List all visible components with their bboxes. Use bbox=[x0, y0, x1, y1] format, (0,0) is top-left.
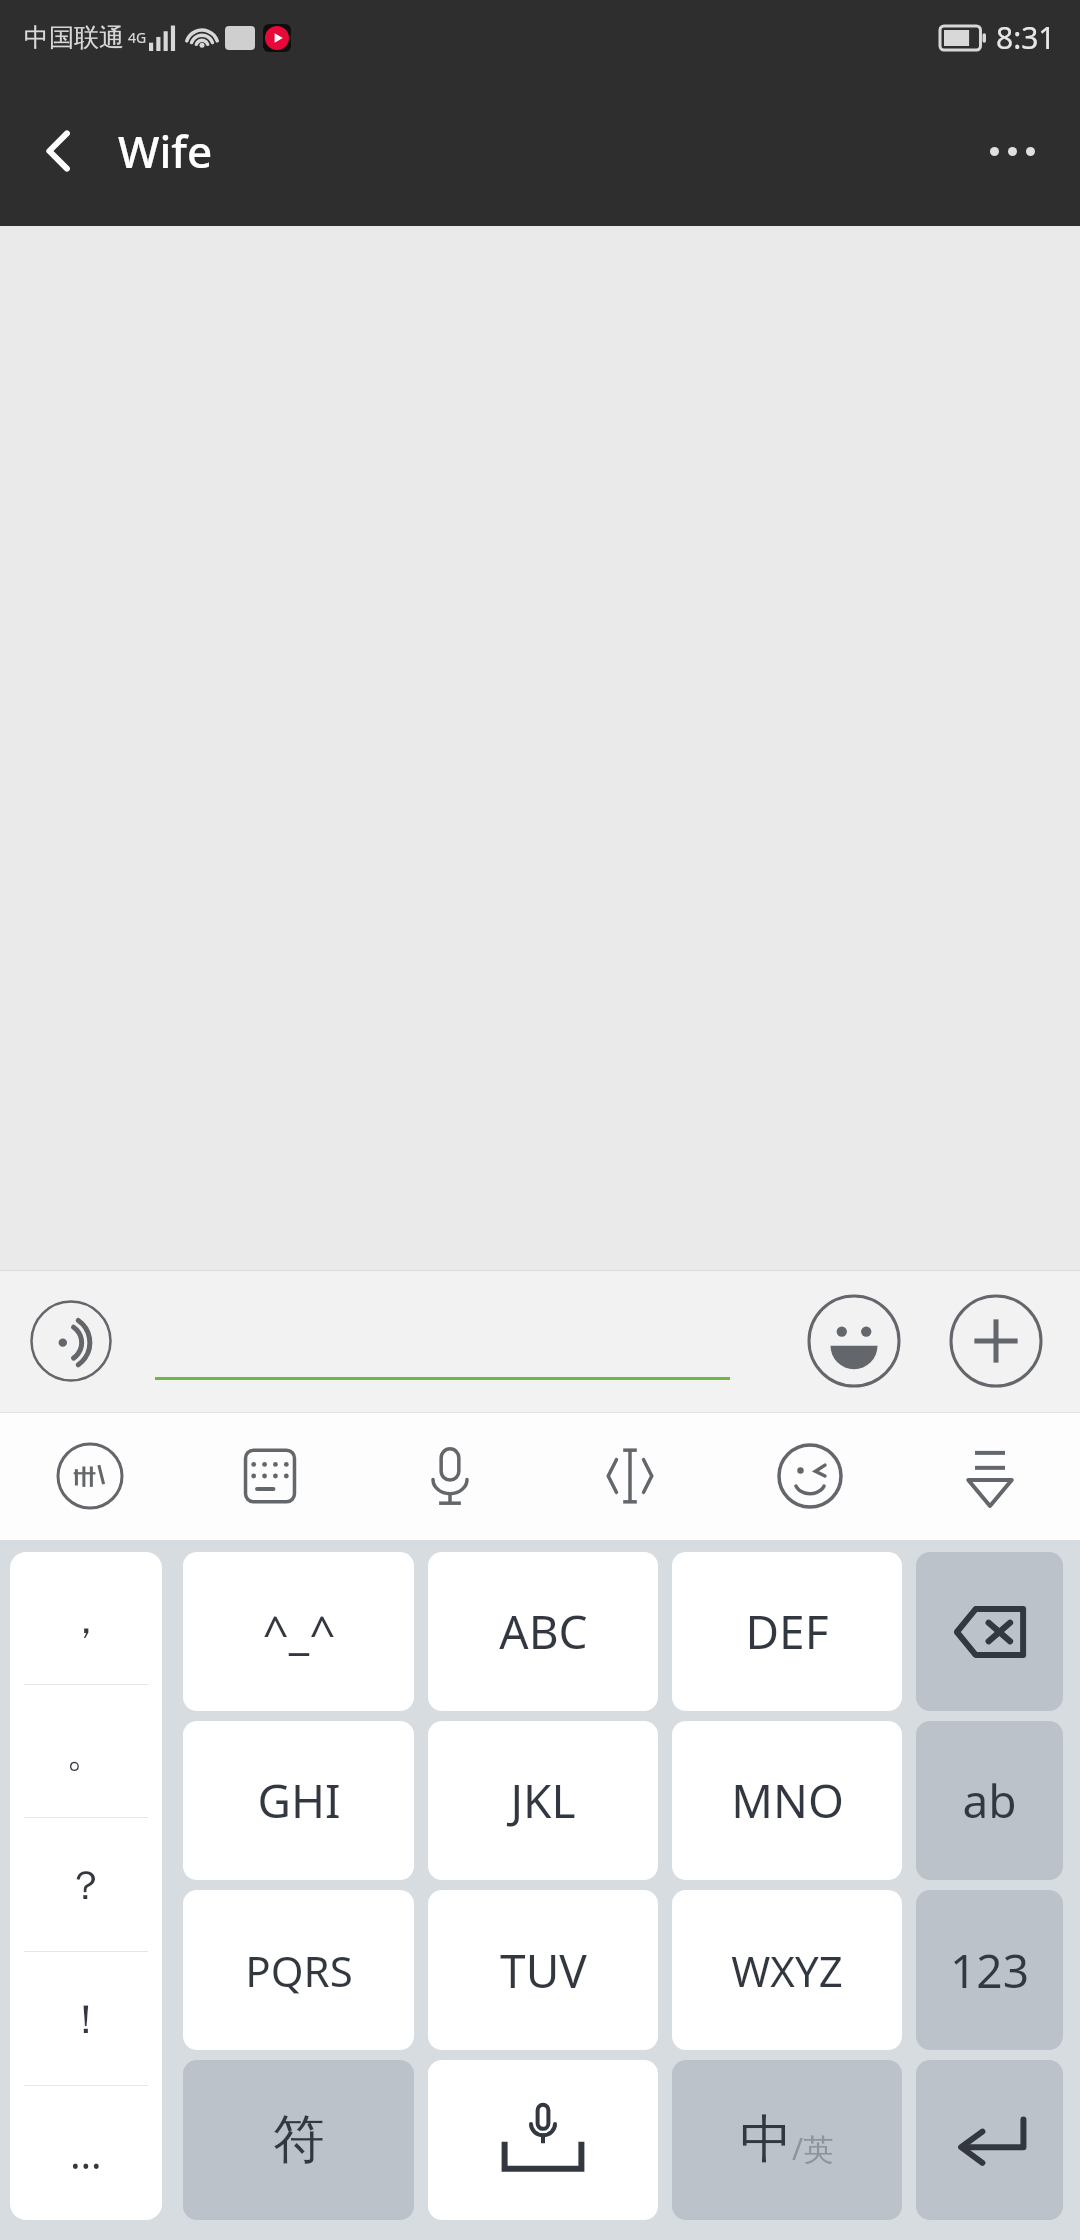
button[interactable]: ab bbox=[916, 1721, 1063, 1880]
staticText: ？ bbox=[66, 1860, 106, 1910]
button[interactable]: 123 bbox=[916, 1890, 1063, 2050]
staticText: ， bbox=[66, 1594, 106, 1644]
staticText: TUV bbox=[500, 1939, 587, 2002]
button[interactable]: ！ bbox=[10, 1952, 162, 2086]
staticText: PQRS bbox=[245, 1942, 353, 1999]
staticText: 123 bbox=[950, 1939, 1029, 2002]
button[interactable]: Hide keyboard bbox=[900, 1412, 1080, 1540]
button[interactable]: 。 bbox=[10, 1685, 162, 1818]
button[interactable] bbox=[155, 1294, 775, 1394]
staticText: WXYZ bbox=[731, 1942, 843, 1999]
button[interactable]: More functions bbox=[948, 1293, 1044, 1389]
staticText: JKL bbox=[510, 1769, 576, 1832]
button[interactable]: GHI bbox=[183, 1721, 414, 1880]
button[interactable]: Input method logo bbox=[0, 1412, 180, 1540]
button[interactable]: 符 bbox=[183, 2060, 414, 2220]
button[interactable]: Voice input bbox=[30, 1300, 112, 1382]
staticText: … bbox=[70, 2126, 102, 2180]
button[interactable]: ABC bbox=[428, 1552, 658, 1711]
button[interactable]: ， bbox=[10, 1552, 162, 1685]
button[interactable]: More options bbox=[964, 103, 1060, 199]
staticText: 中 bbox=[740, 2107, 792, 2173]
staticText: 8:31 bbox=[996, 17, 1056, 58]
button[interactable]: PQRS bbox=[183, 1890, 414, 2050]
button[interactable]: DEF bbox=[672, 1552, 902, 1711]
staticText: 中国联通 bbox=[24, 22, 124, 53]
button[interactable]: WXYZ bbox=[672, 1890, 902, 2050]
button[interactable]: Text cursor bbox=[540, 1412, 720, 1540]
button[interactable]: MNO bbox=[672, 1721, 902, 1880]
staticText: 符 bbox=[273, 2107, 325, 2173]
button[interactable]: Enter bbox=[916, 2060, 1063, 2220]
button[interactable]: Space bbox=[428, 2060, 658, 2220]
staticText: MNO bbox=[731, 1769, 844, 1832]
button[interactable]: … bbox=[10, 2086, 162, 2220]
staticText: /英 bbox=[792, 2128, 834, 2169]
staticText: 4G bbox=[128, 28, 147, 47]
staticText: 。 bbox=[66, 1727, 106, 1777]
button[interactable]: Emoji bbox=[806, 1293, 902, 1389]
button[interactable]: ？ bbox=[10, 1818, 162, 1952]
staticText: DEF bbox=[745, 1600, 829, 1663]
staticText: ab bbox=[962, 1769, 1017, 1832]
button[interactable]: 中 bbox=[672, 2060, 902, 2220]
button[interactable]: Backspace bbox=[916, 1552, 1063, 1711]
button[interactable]: JKL bbox=[428, 1721, 658, 1880]
staticText: ABC bbox=[499, 1600, 588, 1663]
staticText: ^_^ bbox=[262, 1600, 336, 1663]
button[interactable]: Keyboard layout bbox=[180, 1412, 360, 1540]
staticText: ！ bbox=[66, 1994, 106, 2044]
button[interactable]: Back bbox=[14, 106, 104, 196]
button[interactable]: Emoticons bbox=[720, 1412, 900, 1540]
staticText: Wife bbox=[118, 121, 213, 181]
staticText: GHI bbox=[257, 1769, 341, 1832]
button[interactable]: Voice input bbox=[360, 1412, 540, 1540]
button[interactable]: ^_^ bbox=[183, 1552, 414, 1711]
button[interactable]: TUV bbox=[428, 1890, 658, 2050]
